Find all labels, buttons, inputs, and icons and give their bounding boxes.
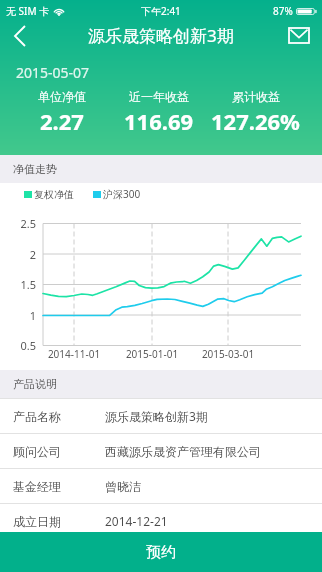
staticText: 0.5 [0, 338, 36, 353]
staticText: 沪深300 [103, 187, 141, 201]
staticText: 2.27 [40, 106, 84, 136]
staticText: 127.26% [211, 106, 300, 136]
staticText: 1.5 [0, 277, 36, 292]
staticText: 2 [0, 247, 36, 262]
staticText: 产品说明 [13, 377, 57, 391]
staticText: 无 SIM 卡 [6, 4, 50, 18]
staticText: 87% [273, 4, 293, 18]
staticText: 源乐晟策略创新3期 [105, 408, 208, 424]
button[interactable]: Messages [275, 19, 322, 52]
staticText: 2014-12-21 [105, 513, 168, 529]
staticText: 1 [0, 308, 36, 323]
staticText: 2015-03-01 [198, 347, 258, 361]
staticText: 源乐晟策略创新3期 [88, 24, 234, 47]
staticText: 2.5 [0, 216, 36, 231]
staticText: 顾问公司 [13, 444, 61, 459]
staticText: 复权净值 [34, 188, 74, 201]
staticText: 西藏源乐晟资产管理有限公司 [105, 444, 261, 459]
staticText: 预约 [146, 543, 176, 562]
staticText: 累计收益 [232, 89, 280, 104]
staticText: 2015-05-07 [16, 63, 90, 82]
staticText: 2015-01-01 [122, 347, 182, 361]
button[interactable]: 预约 [0, 532, 322, 572]
staticText: 基金经理 [13, 479, 61, 494]
button[interactable]: Back [0, 19, 40, 52]
staticText: 曾晓洁 [105, 479, 141, 494]
staticText: 116.69 [124, 106, 194, 136]
staticText: 下午2:41 [141, 4, 181, 18]
staticText: 2014-11-01 [44, 347, 104, 361]
staticText: 成立日期 [13, 514, 61, 529]
staticText: 近一年收益 [129, 89, 189, 104]
staticText: 产品名称 [13, 409, 61, 424]
staticText: 单位净值 [38, 89, 86, 104]
staticText: 净值走势 [13, 162, 57, 176]
